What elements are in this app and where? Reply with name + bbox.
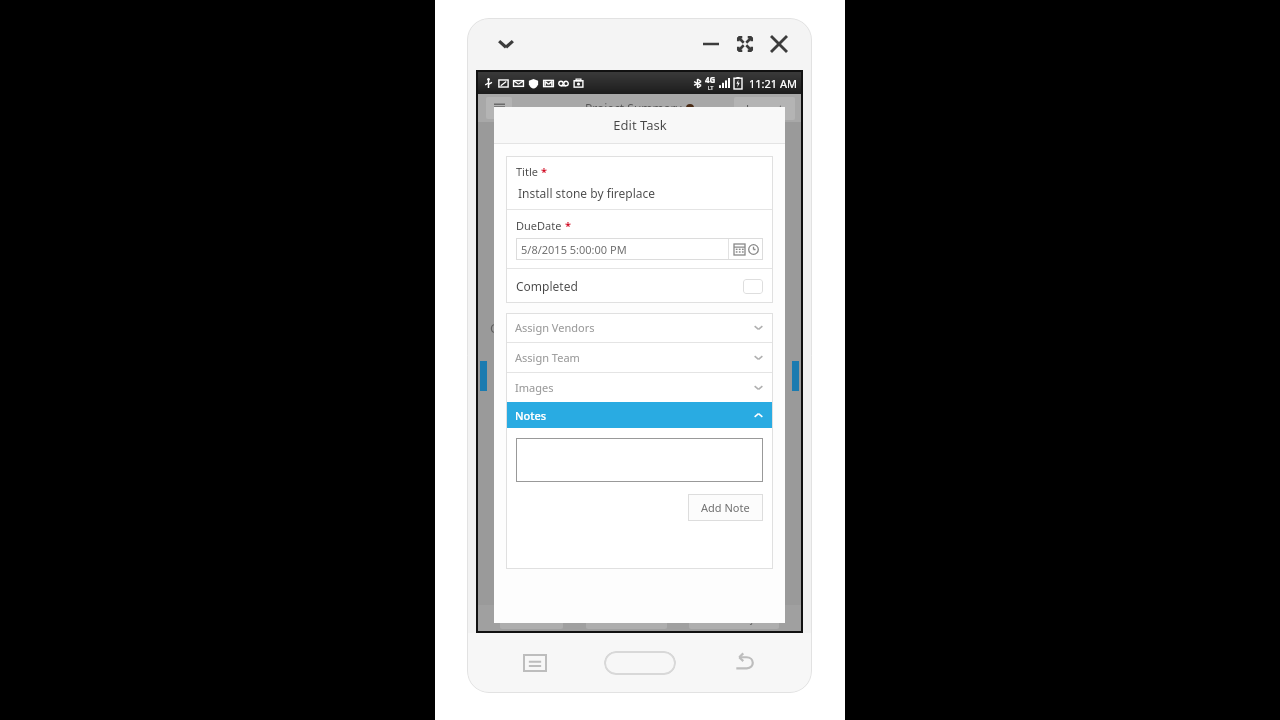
staticText: Logout bbox=[746, 101, 783, 116]
button[interactable]: Add Locations bbox=[586, 607, 667, 629]
staticText: 5/8/2015 5:00:00 PM bbox=[521, 242, 728, 257]
staticText: Install stone by fireplace bbox=[518, 185, 656, 201]
staticText: Images bbox=[515, 380, 753, 395]
button[interactable]: Title bbox=[506, 156, 773, 209]
button[interactable]: Completed bbox=[506, 269, 773, 303]
button[interactable]: Assign Vendors bbox=[506, 313, 773, 342]
staticText: Notes bbox=[515, 408, 753, 423]
button[interactable]: Recent apps bbox=[511, 639, 559, 687]
staticText: * bbox=[541, 164, 547, 179]
button[interactable]: Menu bbox=[486, 97, 512, 119]
button[interactable]: Logout bbox=[746, 101, 783, 116]
button[interactable]: 5/8/2015 5:00:00 PM bbox=[516, 238, 763, 260]
staticText: Add Locations bbox=[593, 611, 660, 625]
staticText: 4G bbox=[705, 74, 716, 85]
button[interactable]: Minimize bbox=[696, 29, 726, 59]
button[interactable]: Collapse bbox=[489, 27, 523, 61]
staticText: Assign Vendors bbox=[515, 320, 753, 335]
button[interactable]: Maximize bbox=[730, 29, 760, 59]
button[interactable] bbox=[516, 438, 763, 482]
staticText: DueDate bbox=[516, 218, 562, 233]
staticText: Back To Projects bbox=[696, 611, 772, 625]
button[interactable]: Assign Team bbox=[506, 343, 773, 372]
button[interactable]: Save/Send bbox=[500, 607, 563, 629]
button[interactable]: Add Note bbox=[688, 494, 763, 521]
staticText: LT bbox=[708, 85, 714, 92]
staticText: 11:21 AM bbox=[749, 76, 797, 91]
button[interactable]: Pick date and time bbox=[729, 238, 763, 260]
staticText: Add Note bbox=[701, 500, 750, 515]
button[interactable]: Close bbox=[764, 29, 794, 59]
button[interactable]: Back To Projects bbox=[689, 607, 779, 629]
button[interactable]: Home bbox=[604, 651, 676, 675]
staticText: Save/Send bbox=[507, 611, 556, 625]
staticText: Title bbox=[516, 164, 538, 179]
button[interactable]: Back bbox=[720, 639, 768, 687]
staticText: Completed bbox=[516, 278, 743, 294]
staticText: Project Summary bbox=[585, 100, 682, 116]
staticText: Edit Task bbox=[613, 116, 667, 134]
button[interactable]: Images bbox=[506, 373, 773, 402]
staticText: * bbox=[565, 218, 571, 233]
staticText: Assign Team bbox=[515, 350, 753, 365]
button[interactable]: Notes bbox=[506, 402, 773, 428]
staticText: C bbox=[490, 319, 499, 337]
